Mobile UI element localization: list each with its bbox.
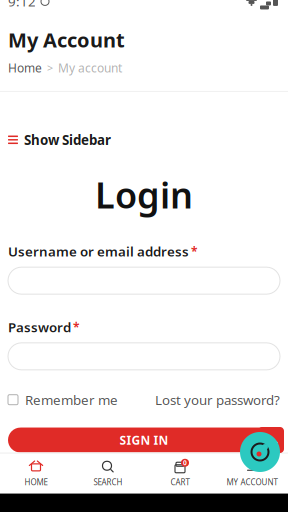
button[interactable]: HOME: [0, 454, 72, 494]
button[interactable]: 0: [144, 454, 216, 494]
button[interactable]: SIGN IN: [8, 428, 280, 453]
staticText: 0: [183, 458, 187, 467]
staticText: HOME: [24, 477, 47, 487]
button[interactable]: Remember me: [8, 391, 118, 409]
staticText: MY ACCOUNT: [226, 477, 277, 487]
button[interactable]: Home: [8, 60, 42, 76]
staticText: CART: [170, 477, 189, 487]
button[interactable]: MY ACCOUNT: [216, 454, 288, 494]
button[interactable]: Lost your password?: [155, 391, 280, 409]
button[interactable]: SEARCH: [72, 454, 144, 494]
staticText: Login: [95, 171, 193, 218]
staticText: >: [47, 61, 53, 75]
staticText: Username or email address: [8, 242, 189, 260]
staticText: My account: [58, 60, 122, 76]
button[interactable]: Scroll to top: [258, 427, 284, 453]
button[interactable]: Support: [240, 432, 280, 472]
button[interactable]: Show Sidebar: [8, 131, 111, 149]
staticText: *: [191, 243, 198, 259]
staticText: 9:12: [8, 0, 36, 10]
staticText: Remember me: [25, 391, 118, 409]
staticText: *: [73, 319, 80, 335]
staticText: SIGN IN: [119, 432, 168, 448]
staticText: Home: [8, 60, 42, 76]
staticText: Lost your password?: [155, 391, 280, 409]
staticText: My Account: [8, 26, 125, 53]
staticText: Show Sidebar: [24, 131, 111, 149]
staticText: Password: [8, 318, 71, 336]
staticText: SEARCH: [93, 477, 122, 487]
